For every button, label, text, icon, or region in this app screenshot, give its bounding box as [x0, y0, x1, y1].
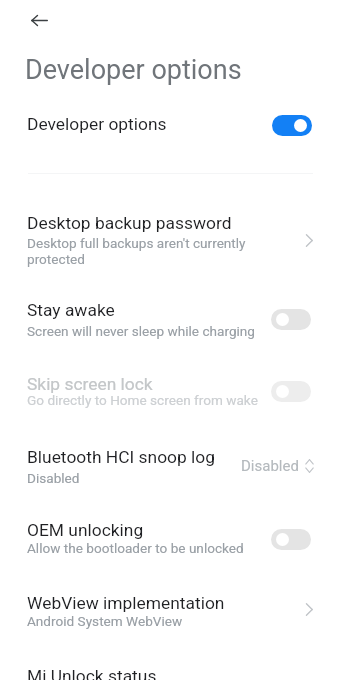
button[interactable]: Skip screen lock switch — [271, 381, 311, 402]
staticText: Stay awake — [27, 300, 115, 320]
button[interactable]: Desktop backup password — [296, 227, 322, 253]
staticText: Allow the bootloader to be unlocked — [27, 540, 244, 556]
staticText: Developer options — [27, 114, 167, 134]
button[interactable]: WebView implementation — [0, 580, 340, 650]
staticText: Desktop backup password — [27, 213, 232, 233]
button[interactable]: OEM unlocking switch — [271, 529, 311, 550]
staticText: OEM unlocking — [27, 520, 144, 540]
staticText: Developer options — [25, 54, 242, 86]
button[interactable]: Stay awake — [0, 288, 340, 358]
staticText: Android System WebView — [27, 613, 183, 629]
staticText: Mi Unlock status — [27, 666, 157, 680]
staticText: WebView implementation — [27, 593, 225, 613]
button[interactable]: Back — [20, 1, 58, 39]
staticText: Bluetooth HCI snoop log — [27, 447, 215, 467]
button[interactable]: OEM unlocking — [0, 506, 340, 576]
button[interactable]: Bluetooth HCI snoop log — [0, 434, 340, 504]
staticText: Desktop full backups aren't currently pr… — [27, 235, 246, 267]
button[interactable]: Stay awake switch — [271, 309, 311, 330]
staticText: Disabled — [241, 457, 299, 475]
staticText: Disabled — [27, 470, 80, 486]
button[interactable]: Desktop backup password — [0, 196, 340, 286]
button[interactable]: WebView implementation — [296, 596, 322, 622]
staticText: Go directly to Home screen from wake — [27, 392, 258, 408]
button[interactable]: Skip screen lock — [0, 360, 340, 430]
button[interactable]: Developer options switch — [272, 115, 312, 136]
button[interactable]: Developer options — [0, 101, 340, 149]
button[interactable]: Change Bluetooth HCI snoop log — [241, 457, 314, 475]
staticText: Screen will never sleep while charging — [27, 323, 255, 339]
button[interactable]: Mi Unlock status — [0, 653, 340, 680]
staticText: Skip screen lock — [27, 374, 153, 394]
